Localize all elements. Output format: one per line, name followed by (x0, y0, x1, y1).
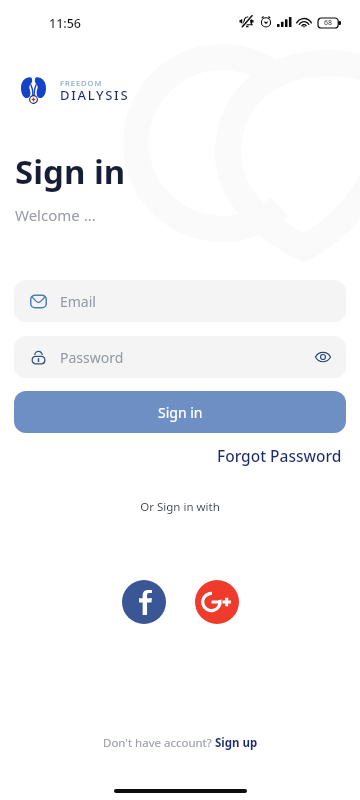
staticText: 68 (324, 18, 333, 28)
staticText: FREEDOM (60, 78, 103, 88)
button[interactable]: Don't have account? (0, 735, 360, 751)
staticText: Or Sign in with (0, 499, 360, 515)
staticText: Email (60, 292, 96, 311)
button[interactable]: Forgot Password (217, 442, 360, 469)
button[interactable]: Password (14, 336, 346, 378)
staticText: Sign up (215, 735, 258, 751)
staticText: 11:56 (49, 15, 82, 32)
button[interactable]: Sign in (14, 391, 346, 433)
button[interactable]: Sign in with Google (195, 580, 239, 624)
button[interactable]: Email (14, 280, 346, 322)
staticText: Forgot Password (217, 445, 342, 466)
button[interactable]: Sign in with Facebook (122, 580, 166, 624)
staticText: Welcome ... (15, 205, 96, 225)
staticText: Password (60, 348, 124, 367)
button[interactable]: Show password (315, 350, 331, 364)
staticText: Sign in (158, 403, 203, 422)
staticText: DIALYSIS (60, 86, 130, 104)
staticText: Sign in (15, 149, 126, 194)
staticText: Don't have account? (103, 735, 215, 751)
